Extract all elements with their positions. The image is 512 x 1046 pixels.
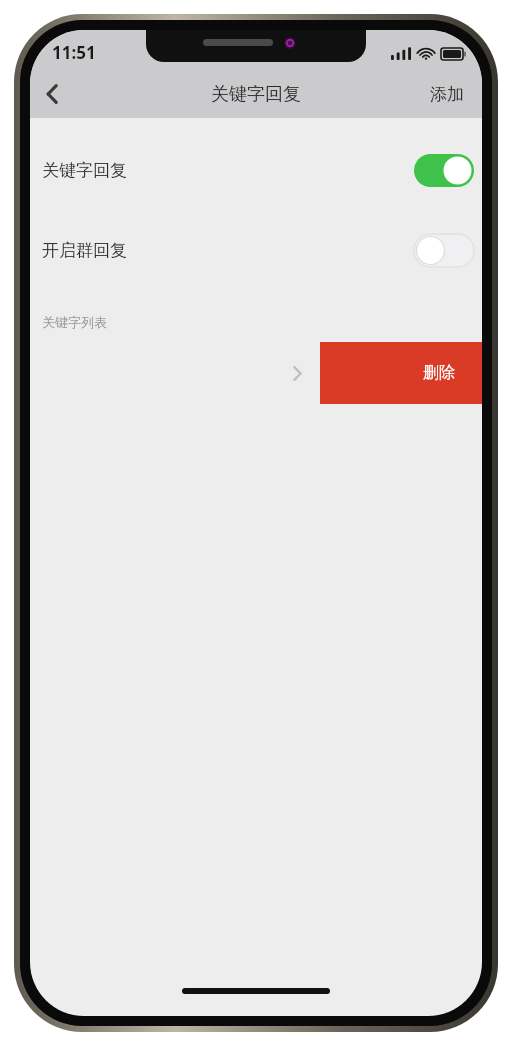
button[interactable]: Open keyword [282,358,312,388]
staticText: 开启群回复 [42,240,127,261]
button[interactable]: 删除 [320,342,482,404]
button[interactable]: 开启群回复 [30,228,482,272]
button[interactable]: 添加 [418,76,476,113]
button[interactable]: Toggle on [414,154,474,187]
staticText: 关键字回复 [211,83,301,106]
staticText: 添加 [430,84,464,105]
staticText: 关键字回复 [42,160,127,181]
button[interactable]: 关键字回复 [30,148,482,192]
button[interactable]: Toggle off [414,234,474,267]
staticText: 删除 [423,363,455,383]
staticText: 11:51 [52,41,96,64]
staticText: 关键字列表 [42,314,107,330]
button[interactable]: Back [30,72,74,116]
